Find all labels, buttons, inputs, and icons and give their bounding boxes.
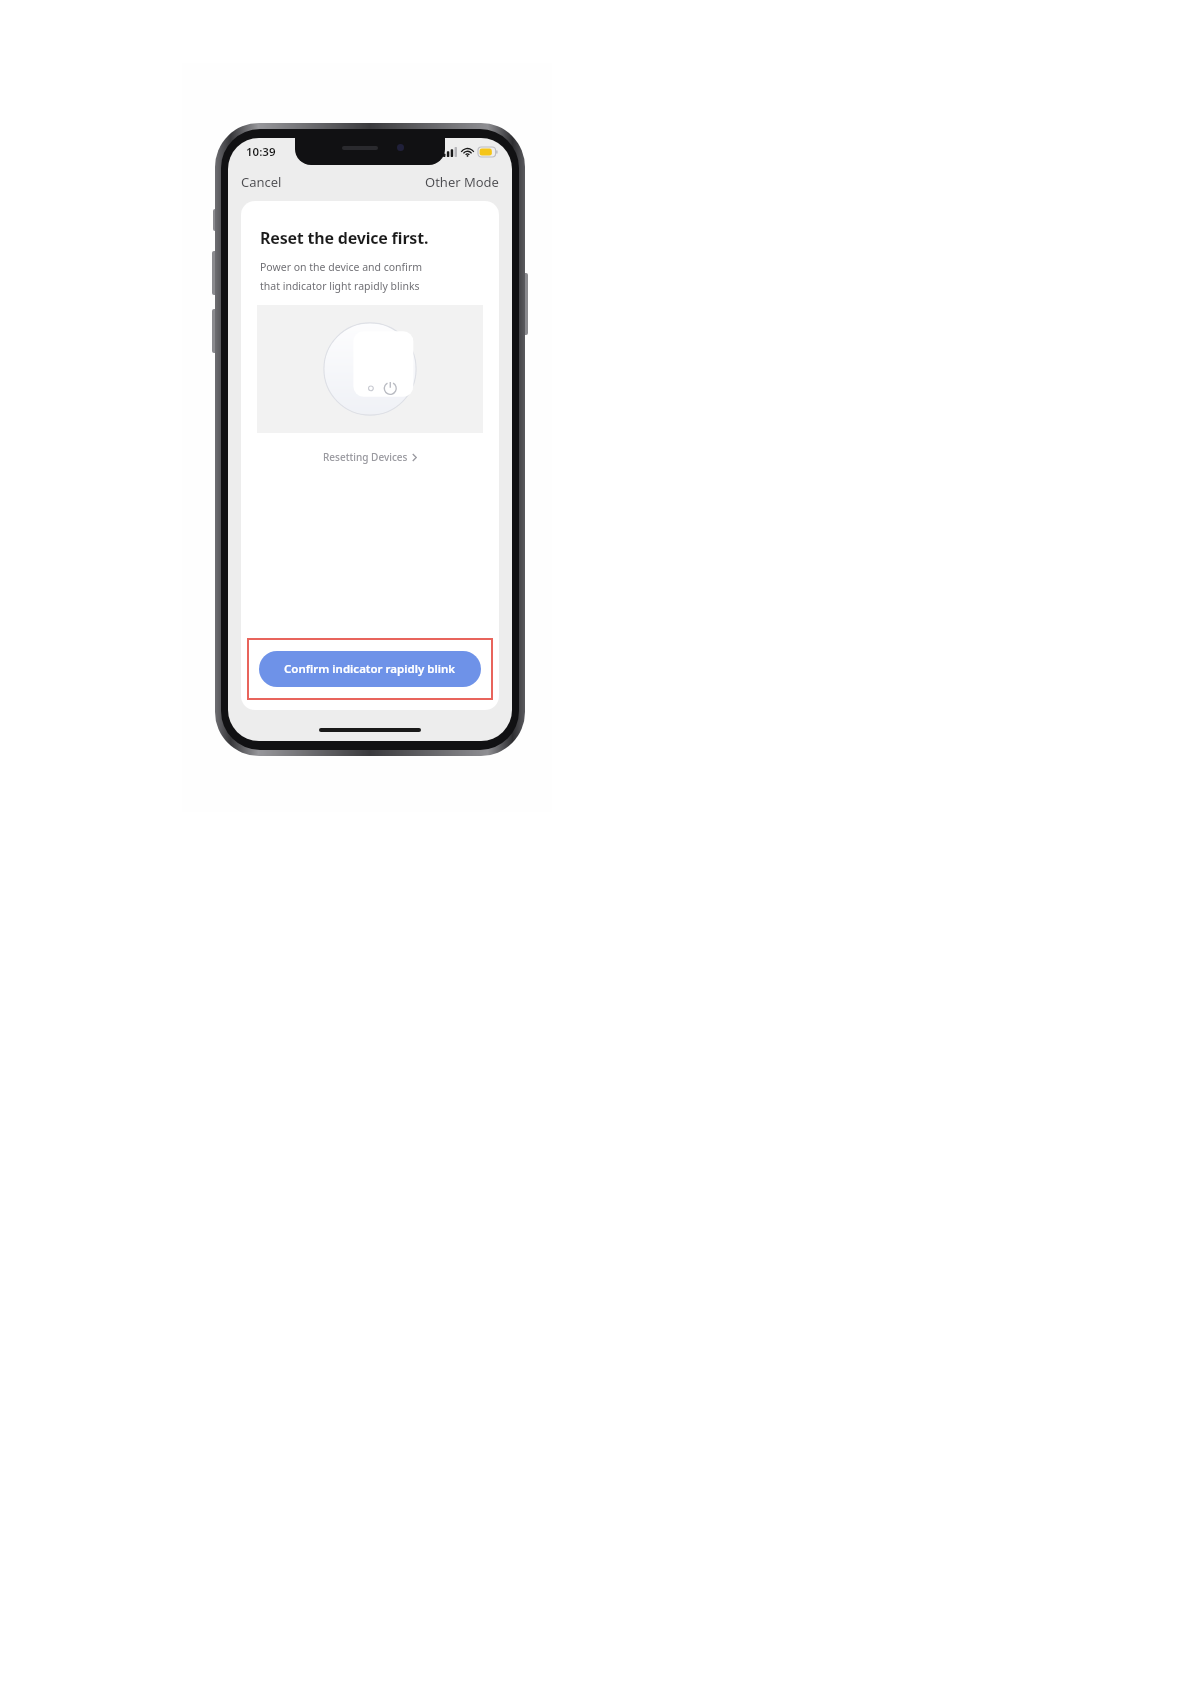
staticText: Resetting Devices <box>323 450 408 464</box>
button[interactable]: Resetting Devices <box>241 447 499 467</box>
staticText: Cancel <box>241 173 282 191</box>
button[interactable]: Cancel <box>228 169 292 195</box>
staticText: Confirm indicator rapidly blink <box>284 661 456 677</box>
other: Smart device illustration <box>322 321 418 417</box>
button[interactable]: Confirm indicator rapidly blink <box>259 651 481 687</box>
staticText: 10:39 <box>246 144 276 160</box>
staticText: Power on the device and confirm <box>260 260 423 274</box>
button[interactable]: Other Mode <box>415 169 512 195</box>
staticText: Other Mode <box>425 173 499 191</box>
staticText: that indicator light rapidly blinks <box>260 279 420 293</box>
staticText: Reset the device first. <box>260 227 429 249</box>
